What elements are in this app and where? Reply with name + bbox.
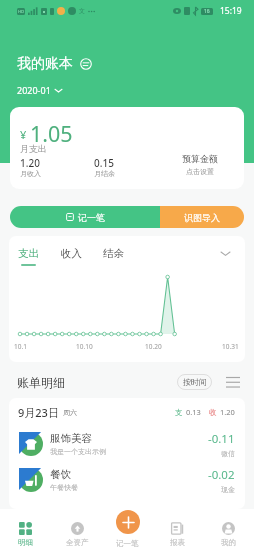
button[interactable]: 餐饮	[9, 462, 245, 498]
staticText: 餐饮	[50, 468, 71, 481]
staticText: 月支出	[20, 143, 47, 154]
button[interactable]: 收入	[61, 247, 82, 266]
staticText: 预算金额	[182, 153, 218, 164]
staticText: 收入	[61, 247, 82, 260]
staticText: 我的	[221, 538, 236, 547]
button[interactable]: 2020-01	[17, 84, 62, 96]
staticText: 月结余	[94, 169, 115, 178]
button[interactable]: 记一笔	[10, 206, 160, 228]
button[interactable]: 展开	[216, 244, 234, 262]
staticText: 文	[79, 7, 85, 15]
staticText: ¥	[20, 127, 27, 142]
button[interactable]: 明细	[2, 509, 48, 550]
staticText: 月收入	[20, 169, 41, 178]
staticText: 支	[175, 408, 183, 417]
staticText: 现金	[221, 485, 235, 494]
staticText: 我是一个支出示例	[50, 447, 106, 456]
staticText: 明细	[18, 538, 33, 547]
button[interactable]: 结余	[103, 247, 124, 266]
staticText: 服饰美容	[50, 432, 92, 445]
staticText: 午餐快餐	[50, 483, 78, 492]
staticText: 15:19	[220, 5, 242, 17]
button[interactable]: 我的	[205, 509, 251, 550]
staticText: 10.20	[145, 342, 162, 351]
button[interactable]: 识图导入	[160, 206, 244, 228]
other: 记一笔	[116, 510, 140, 534]
button[interactable]: 支出	[18, 247, 39, 266]
staticText: 10.31	[222, 342, 239, 351]
staticText: 1.20	[220, 407, 235, 417]
button[interactable]: 服饰美容	[9, 426, 245, 462]
button[interactable]: 记一笔	[104, 509, 150, 550]
staticText: 2020-01	[17, 84, 51, 96]
staticText: 0.13	[186, 407, 201, 417]
button[interactable]: 预算金额	[182, 153, 224, 176]
button[interactable]: 按时间	[177, 374, 212, 390]
staticText: 支出	[18, 247, 39, 260]
staticText: 全资产	[66, 538, 89, 547]
button[interactable]: 全资产	[54, 509, 100, 550]
staticText: 周六	[63, 408, 77, 417]
staticText: -0.11	[208, 431, 235, 447]
staticText: 9月23日	[18, 405, 59, 420]
staticText: 1.20	[20, 156, 40, 170]
staticText: 结余	[103, 247, 124, 260]
button[interactable]: 列表视图	[224, 373, 242, 391]
staticText: 10.10	[76, 342, 93, 351]
staticText: 记一笔	[116, 539, 139, 548]
staticText: -0.02	[208, 467, 235, 483]
staticText: 账单明细	[17, 375, 65, 390]
button[interactable]: 报表	[154, 509, 200, 550]
staticText: 识图导入	[184, 212, 220, 223]
staticText: 16	[204, 8, 210, 15]
staticText: 10.1	[14, 342, 27, 351]
staticText: 按时间	[183, 377, 207, 387]
staticText: 记一笔	[78, 212, 105, 223]
staticText: 点击设置	[186, 167, 214, 176]
staticText: 收	[209, 408, 217, 417]
staticText: HD	[18, 9, 25, 15]
staticText: 微信	[221, 449, 235, 458]
staticText: 1.05	[30, 119, 73, 148]
staticText: 报表	[170, 538, 185, 547]
staticText: 0.15	[94, 156, 114, 170]
staticText: 我的账本	[17, 55, 73, 73]
